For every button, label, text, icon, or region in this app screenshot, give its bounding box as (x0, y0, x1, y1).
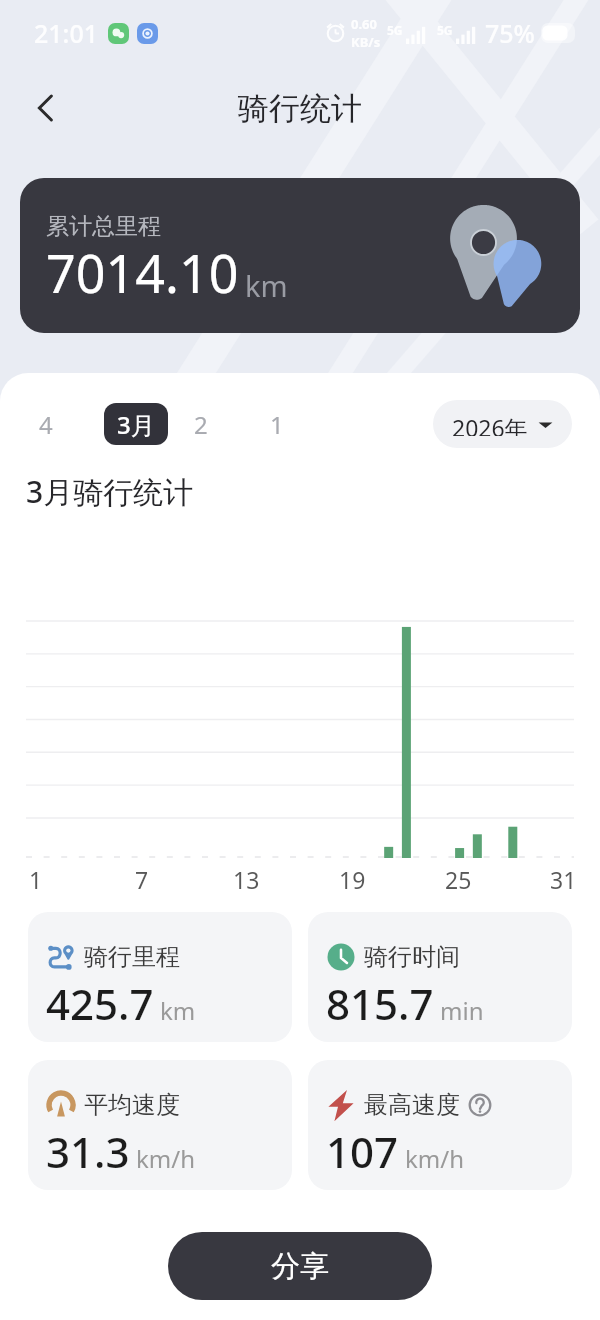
staticText: 815.7 (326, 975, 434, 1032)
staticText: 31 (550, 864, 577, 890)
staticText: 21:01 (34, 16, 99, 50)
staticText: KB/s (351, 33, 381, 51)
staticText: 最高速度 (364, 1090, 460, 1120)
staticText: 7 (135, 864, 149, 890)
staticText: 分享 (271, 1248, 329, 1285)
button[interactable]: 骑行里程 (28, 912, 292, 1042)
staticText: 7014.10 (46, 237, 239, 308)
staticText: km/h (405, 1142, 465, 1175)
button[interactable]: 4 (24, 403, 68, 445)
staticText: km (245, 266, 288, 305)
staticText: 骑行统计 (238, 89, 362, 128)
staticText: 75% (485, 16, 535, 50)
button[interactable]: 2 (179, 403, 223, 445)
staticText: 13 (233, 864, 260, 890)
staticText: 骑行里程 (84, 942, 180, 972)
button[interactable]: Back (20, 82, 72, 134)
staticText: 5G (437, 22, 453, 38)
staticText: 1 (270, 408, 284, 441)
button[interactable]: 最高速度 (308, 1060, 572, 1190)
button[interactable]: 累计总里程 (20, 178, 580, 333)
staticText: 107 (326, 1123, 399, 1180)
staticText: 5G (387, 22, 403, 38)
staticText: min (440, 994, 484, 1027)
staticText: 骑行时间 (364, 942, 460, 972)
staticText: 425.7 (46, 975, 154, 1032)
staticText: 0.60 (351, 15, 377, 33)
staticText: 31.3 (46, 1123, 130, 1180)
staticText: 2 (194, 408, 208, 441)
button[interactable]: 3月 (104, 403, 168, 445)
staticText: km/h (136, 1142, 196, 1175)
staticText: 2026年 (452, 412, 528, 436)
staticText: 1 (29, 864, 43, 890)
staticText: 平均速度 (84, 1090, 180, 1120)
staticText: 3月骑行统计 (26, 471, 194, 512)
button[interactable]: 2026年 (433, 400, 572, 448)
staticText: 3月 (117, 408, 155, 441)
button[interactable]: 平均速度 (28, 1060, 292, 1190)
staticText: 4 (39, 408, 53, 441)
staticText: 19 (339, 864, 366, 890)
staticText: 25 (445, 864, 472, 890)
staticText: 累计总里程 (46, 212, 161, 241)
button[interactable]: 1 (255, 403, 299, 445)
button[interactable]: 分享 (168, 1232, 432, 1300)
staticText: km (160, 994, 196, 1027)
button[interactable]: 骑行时间 (308, 912, 572, 1042)
